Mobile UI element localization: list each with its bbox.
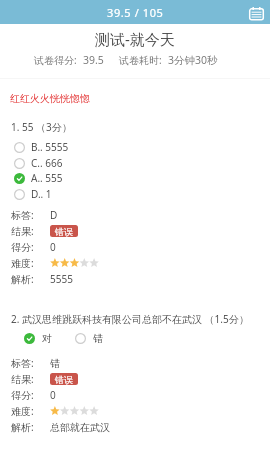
staticText: 红红火火恍恍惚惚 bbox=[10, 92, 90, 105]
button[interactable]: 错 bbox=[75, 331, 103, 345]
staticText: 错 bbox=[93, 332, 103, 345]
staticText: A.. 555 bbox=[31, 171, 63, 185]
staticText: 1. 55 （3分） bbox=[11, 120, 72, 134]
staticText: D.. 1 bbox=[31, 187, 52, 201]
button[interactable]: B.. 5555 bbox=[14, 140, 69, 154]
staticText: 错误 bbox=[55, 374, 73, 385]
button[interactable]: C.. 666 bbox=[14, 156, 63, 170]
button[interactable]: Calendar bbox=[249, 7, 264, 20]
staticText: 得分: bbox=[11, 240, 34, 254]
staticText: D bbox=[50, 208, 58, 222]
staticText: 39.5 / 105 bbox=[107, 5, 164, 20]
staticText: 难度: bbox=[11, 404, 34, 418]
button[interactable]: D.. 1 bbox=[14, 187, 52, 201]
staticText: 0 bbox=[50, 240, 56, 254]
staticText: 测试-就今天 bbox=[95, 29, 175, 49]
staticText: 难度: bbox=[11, 256, 34, 270]
button[interactable]: 对 bbox=[24, 331, 52, 345]
staticText: 5555 bbox=[50, 272, 73, 286]
staticText: 2. 武汉思维跳跃科技有限公司总部不在武汉 （1.5分） bbox=[11, 312, 249, 326]
staticText: 对 bbox=[42, 332, 52, 345]
staticText: 标答: bbox=[11, 356, 34, 370]
staticText: 试卷耗时: bbox=[119, 53, 162, 67]
staticText: 结果: bbox=[11, 372, 34, 386]
staticText: 总部就在武汉 bbox=[50, 421, 110, 434]
staticText: 错 bbox=[50, 357, 60, 370]
staticText: 39.5 bbox=[83, 53, 104, 67]
staticText: C.. 666 bbox=[31, 156, 63, 170]
staticText: 解析: bbox=[11, 272, 34, 286]
staticText: 解析: bbox=[11, 420, 34, 434]
staticText: B.. 5555 bbox=[31, 140, 69, 154]
staticText: 标答: bbox=[11, 208, 34, 222]
staticText: 错误 bbox=[55, 226, 73, 237]
staticText: 3分钟30秒 bbox=[168, 53, 218, 67]
staticText: 结果: bbox=[11, 224, 34, 238]
staticText: 0 bbox=[50, 388, 56, 402]
button[interactable]: A.. 555 bbox=[14, 171, 63, 185]
staticText: 试卷得分: bbox=[34, 53, 77, 67]
staticText: 得分: bbox=[11, 388, 34, 402]
